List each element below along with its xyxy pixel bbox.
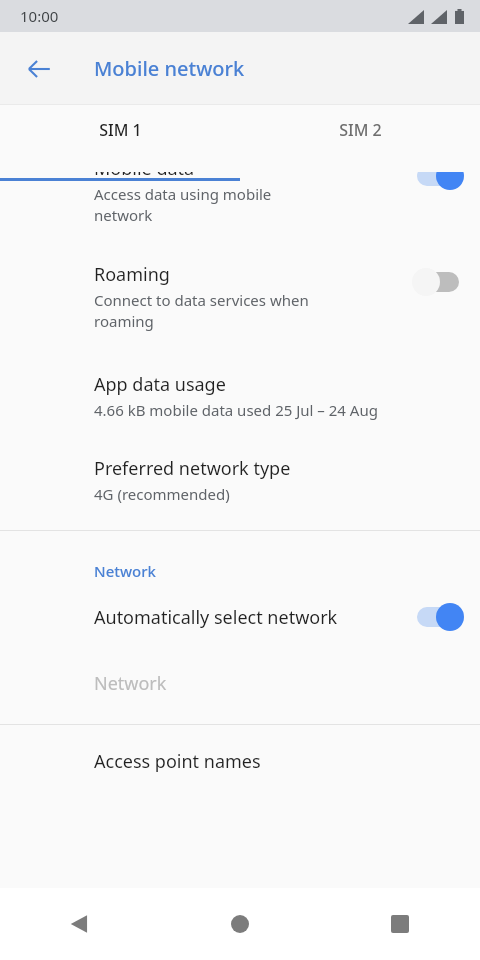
button[interactable]: Access point names	[0, 725, 480, 798]
button[interactable]: App data usage	[0, 350, 480, 434]
staticText: Mobile network	[94, 55, 245, 82]
staticText: Network	[94, 671, 167, 696]
staticText: App data usage	[94, 372, 226, 397]
button[interactable]: SIM 2	[240, 105, 480, 172]
button[interactable]: Mobile data	[0, 172, 480, 240]
button[interactable]: Network	[0, 649, 480, 724]
button[interactable]: Roaming	[0, 240, 480, 350]
staticText: 10:00	[20, 6, 59, 26]
staticText: SIM 1	[99, 119, 142, 141]
button[interactable]: Home	[160, 888, 320, 960]
staticText: Automatically select network	[94, 605, 400, 630]
staticText: Connect to data services when roaming	[94, 290, 309, 332]
staticText: SIM 2	[339, 119, 382, 141]
staticText: Network	[94, 561, 156, 581]
button[interactable]: SIM 1	[0, 105, 240, 172]
staticText: Access point names	[94, 749, 261, 774]
button[interactable]: Automatically select network	[0, 587, 480, 649]
staticText: 4G (recommended)	[94, 484, 230, 504]
staticText: 4.66 kB mobile data used 25 Jul – 24 Aug	[94, 400, 378, 420]
staticText: Access data using mobile network	[94, 184, 272, 226]
button[interactable]: Back	[15, 45, 63, 93]
button[interactable]: Recents	[320, 888, 480, 960]
staticText: Mobile data	[94, 172, 195, 181]
staticText: Preferred network type	[94, 456, 291, 481]
staticText: Roaming	[94, 262, 170, 287]
button[interactable]: Preferred network type	[0, 434, 480, 530]
button[interactable]: Back	[0, 888, 160, 960]
